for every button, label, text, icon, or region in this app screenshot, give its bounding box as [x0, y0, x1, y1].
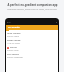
staticText: Gym session [7, 53, 20, 56]
staticText: 6:00 PM Downtown [7, 56, 23, 58]
staticText: A perfect no-gradient companion app [7, 3, 58, 7]
button[interactable]: Design review [6, 38, 58, 45]
staticText: Organise events, keep track of tasks, st… [7, 8, 57, 11]
staticText: Team standup [7, 32, 21, 35]
staticText: Dentist [10, 46, 17, 49]
staticText: 3:30 PM Clinic [7, 49, 19, 51]
staticText: 9:00 AM Office [7, 35, 19, 37]
staticText: My Events [8, 26, 20, 29]
staticText: 11:30 AM Zoom [7, 42, 20, 44]
staticText: Design review [7, 39, 21, 42]
button[interactable]: Dentist [6, 45, 58, 52]
button[interactable]: Gym session [6, 52, 58, 59]
button[interactable]: Team standup [6, 31, 58, 38]
staticText: 9:41 [7, 21, 11, 23]
